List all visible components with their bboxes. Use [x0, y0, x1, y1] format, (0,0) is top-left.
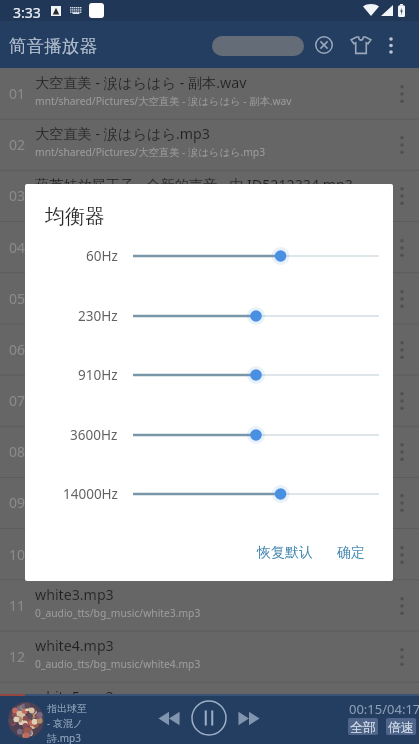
- button[interactable]: 10: [0, 529, 419, 580]
- button[interactable]: 08: [0, 426, 419, 477]
- staticText: white4.mp3: [35, 636, 114, 655]
- button[interactable]: 13: [0, 682, 419, 733]
- button[interactable]: 09: [0, 477, 419, 528]
- staticText: white1.mp3: [35, 482, 114, 501]
- staticText: 910Hz: [78, 366, 118, 384]
- button[interactable]: Next: [233, 702, 265, 734]
- button[interactable]: Item menu: [379, 478, 419, 528]
- button[interactable]: 恢复默认: [251, 538, 319, 568]
- button[interactable]: 12: [0, 631, 419, 682]
- button[interactable]: 07: [0, 375, 419, 426]
- staticText: 00:15/04:17: [349, 700, 419, 718]
- staticText: 10: [9, 545, 26, 564]
- staticText: 04: [9, 238, 26, 257]
- staticText: 0_audio_tts/bg_music/music5.mp3: [35, 299, 203, 313]
- button[interactable]: 06: [0, 324, 419, 375]
- button[interactable]: Item menu: [379, 325, 419, 375]
- staticText: 11: [9, 596, 26, 615]
- staticText: 简音播放器: [9, 35, 97, 57]
- staticText: 0_audio_tts/bg_music/white4.mp3: [35, 657, 201, 671]
- button[interactable]: [133, 244, 379, 268]
- staticText: 07: [9, 391, 26, 410]
- staticText: 0_audio_tts/bg_music/white5.mp3: [35, 708, 201, 722]
- button[interactable]: 04: [0, 222, 419, 273]
- staticText: 06: [9, 340, 26, 359]
- button[interactable]: [133, 423, 379, 447]
- staticText: 恢复默认: [257, 544, 313, 562]
- staticText: 08: [9, 442, 26, 461]
- button[interactable]: [133, 304, 379, 328]
- staticText: 09: [9, 493, 26, 512]
- staticText: 指出球至: [47, 702, 87, 715]
- staticText: 0_audio_tts/bg_music/a.mp3: [35, 196, 174, 210]
- staticText: 确定: [337, 544, 365, 562]
- button[interactable]: Search: [212, 36, 304, 56]
- staticText: 12: [9, 647, 26, 666]
- staticText: 05: [9, 289, 26, 308]
- button[interactable]: Item menu: [379, 223, 419, 273]
- button[interactable]: Previous: [153, 702, 185, 734]
- staticText: 3:33: [13, 3, 41, 22]
- button[interactable]: 05: [0, 273, 419, 324]
- staticText: music8.mp3: [35, 431, 117, 450]
- staticText: 倍速: [388, 719, 414, 735]
- button[interactable]: Pause: [189, 698, 229, 738]
- button[interactable]: Item menu: [379, 683, 419, 733]
- button[interactable]: More options: [377, 31, 405, 59]
- button[interactable]: [133, 363, 379, 387]
- button[interactable]: 01: [0, 68, 419, 119]
- button[interactable]: Theme: [347, 31, 375, 59]
- button[interactable]: 03: [0, 170, 419, 221]
- staticText: 02: [9, 135, 26, 154]
- staticText: 全部: [350, 719, 376, 735]
- staticText: 0_audio_tts/bg_music/white3.mp3: [35, 606, 201, 620]
- staticText: 均衡器: [45, 204, 105, 229]
- staticText: 230Hz: [78, 307, 118, 325]
- staticText: 60Hz: [86, 247, 118, 265]
- staticText: 大空直美 - 涙はらはら - 副本.wav: [35, 73, 247, 92]
- staticText: - 哀混ノ: [47, 716, 84, 730]
- button[interactable]: Clear search: [310, 31, 338, 59]
- button[interactable]: 02: [0, 119, 419, 170]
- staticText: 03: [9, 186, 26, 205]
- staticText: mnt/shared/Pictures/大空直美 - 涙はらはら - 副本.wa…: [35, 94, 292, 108]
- button[interactable]: 确定: [331, 538, 371, 568]
- button[interactable]: 11: [0, 580, 419, 631]
- button[interactable]: Item menu: [379, 274, 419, 324]
- staticText: 14000Hz: [63, 485, 118, 503]
- button[interactable]: Item menu: [379, 171, 419, 221]
- staticText: 3600Hz: [70, 426, 118, 444]
- staticText: white3.mp3: [35, 585, 114, 604]
- staticText: 詩.mp3: [47, 731, 81, 744]
- button[interactable]: [133, 482, 379, 506]
- staticText: 大空直美 - 涙はらはら.mp3: [35, 124, 210, 143]
- button[interactable]: 全部: [348, 718, 378, 735]
- staticText: 01: [9, 84, 26, 103]
- button[interactable]: Item menu: [379, 530, 419, 580]
- staticText: mnt/shared/Pictures/大空直美 - 涙はらはら.mp3: [35, 145, 266, 159]
- button[interactable]: Item menu: [379, 427, 419, 477]
- button[interactable]: 倍速: [386, 718, 416, 735]
- staticText: 葫芦娃放屁王子 - 全新的声音 - 由 ID5212334.mp3: [35, 175, 353, 194]
- button[interactable]: Album art: [8, 702, 44, 738]
- staticText: 0_audio_tts/bg_music/music4.mp3: [35, 248, 203, 262]
- staticText: 13: [9, 698, 26, 717]
- button[interactable]: Item menu: [379, 376, 419, 426]
- staticText: white5.mp3: [35, 687, 114, 706]
